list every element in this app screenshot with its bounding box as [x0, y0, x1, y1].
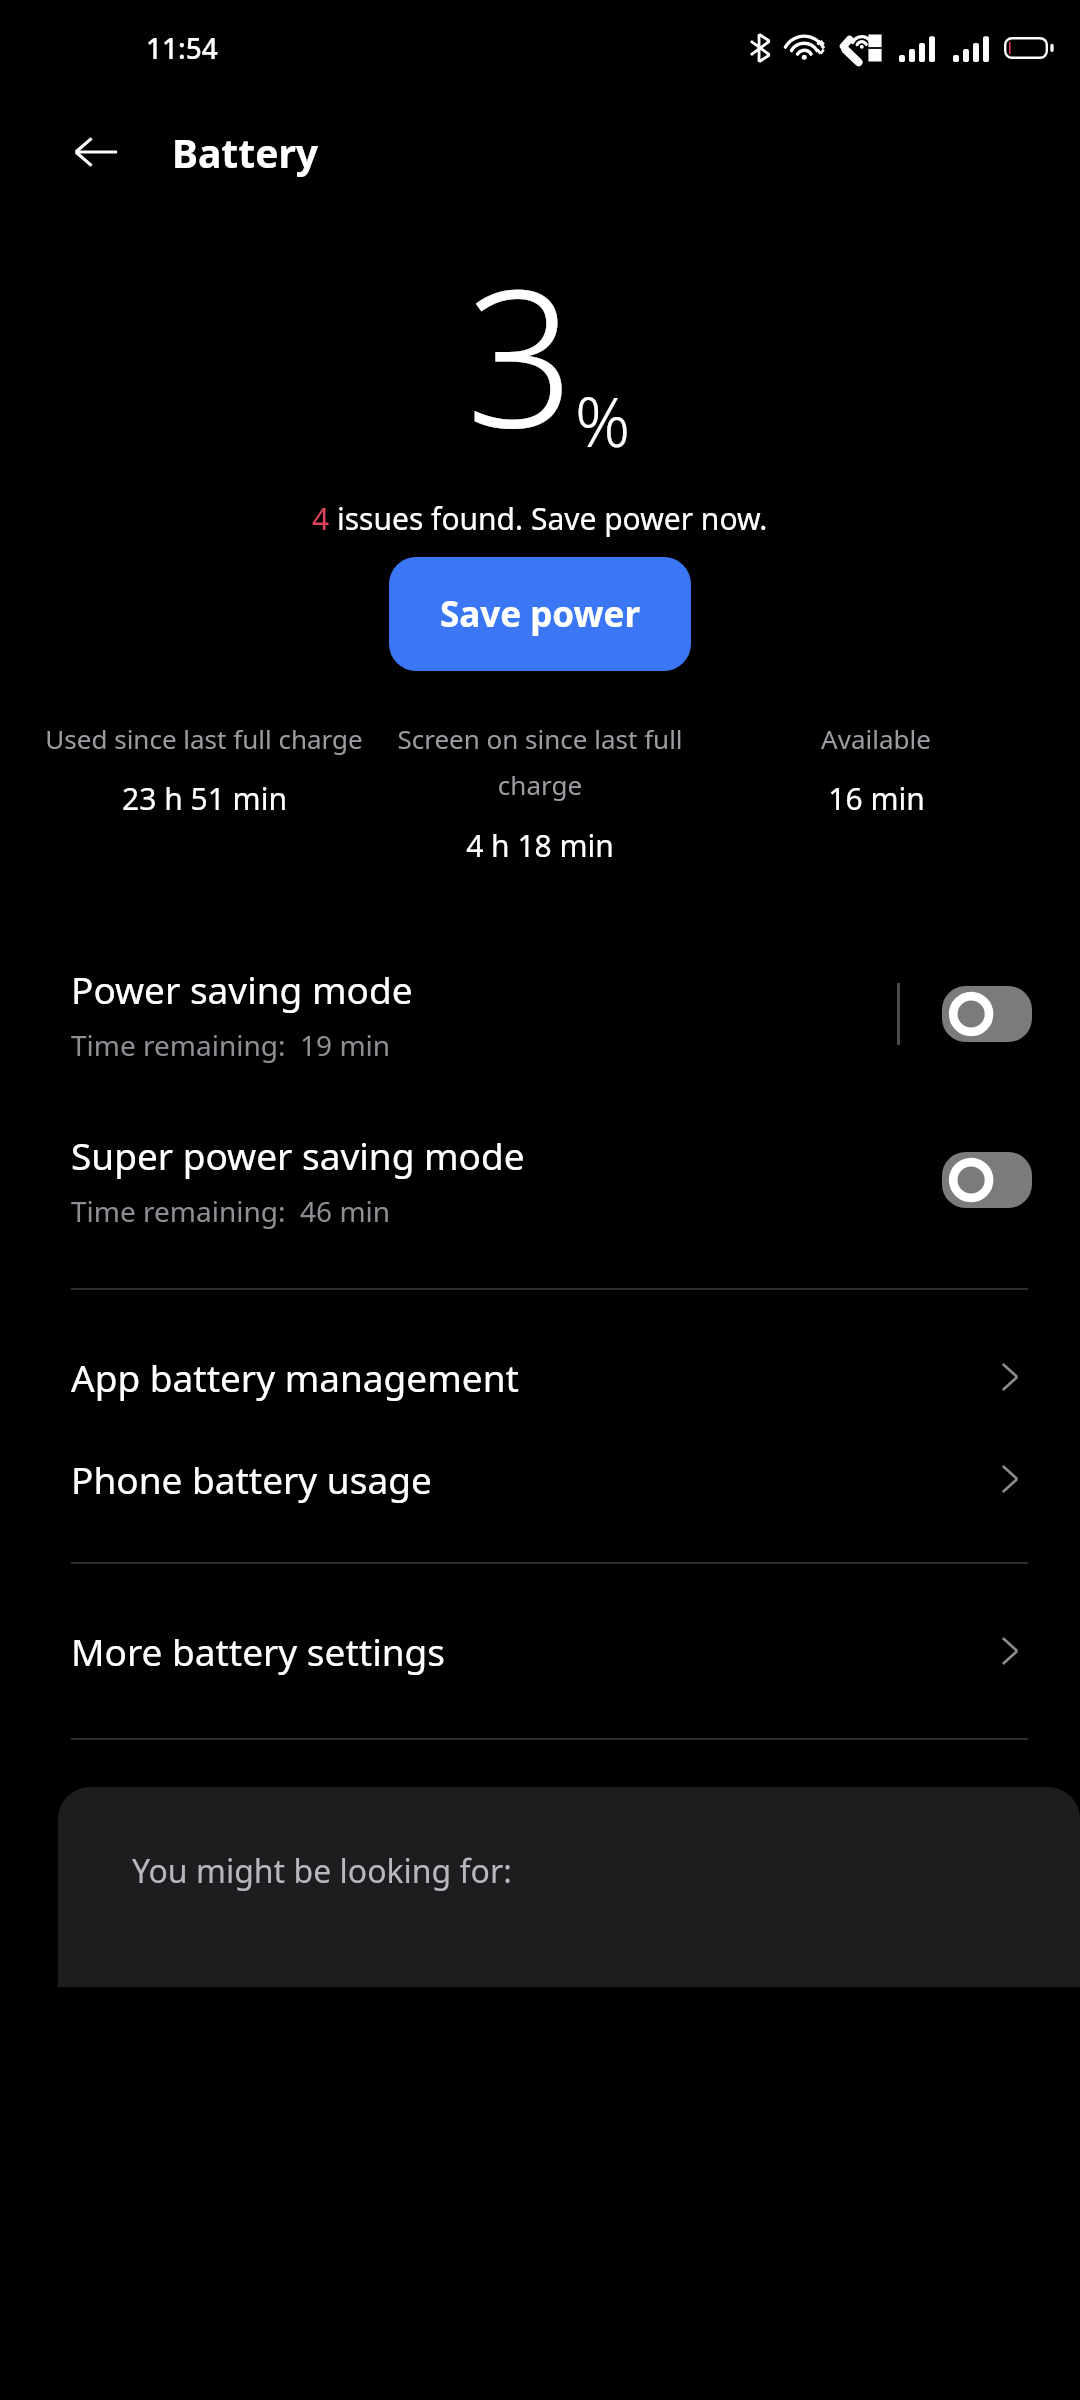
staticText: 11:54	[146, 29, 218, 67]
staticText: Save power	[440, 590, 641, 638]
staticText: Used since last full charge	[45, 721, 363, 756]
staticText: You might be looking for:	[132, 1849, 512, 1893]
staticText: Phone battery usage	[71, 1454, 992, 1504]
staticText: Battery	[172, 126, 319, 179]
staticText: %	[575, 374, 631, 467]
button[interactable]: Back	[58, 114, 134, 190]
staticText: 16 min	[828, 778, 925, 819]
staticText: 3	[466, 224, 575, 483]
button[interactable]: More battery settings	[0, 1626, 1080, 1676]
button[interactable]: Power saving mode toggle	[942, 986, 1032, 1042]
button[interactable]: Phone battery usage	[0, 1454, 1080, 1504]
button[interactable]: Save power	[389, 557, 691, 671]
button[interactable]: You might be looking for:	[58, 1787, 1080, 1987]
staticText: More battery settings	[71, 1626, 992, 1676]
staticText: Available	[821, 721, 931, 756]
staticText: Screen on since last full charge	[380, 721, 700, 803]
staticText: Time remaining: 19 min	[71, 1026, 391, 1064]
staticText: Power saving mode	[71, 964, 413, 1014]
staticText: App battery management	[71, 1352, 992, 1402]
staticText: 4 issues found. Save power now.	[312, 498, 768, 539]
staticText: 4 h 18 min	[466, 825, 614, 866]
staticText: Time remaining: 46 min	[71, 1192, 391, 1230]
staticText: 23 h 51 min	[122, 778, 287, 819]
button[interactable]: Power saving mode	[0, 964, 1080, 1064]
button[interactable]: App battery management	[0, 1352, 1080, 1402]
button[interactable]: Super power saving mode	[0, 1130, 1080, 1230]
staticText: Super power saving mode	[71, 1130, 525, 1180]
button[interactable]: Super power saving mode toggle	[942, 1152, 1032, 1208]
